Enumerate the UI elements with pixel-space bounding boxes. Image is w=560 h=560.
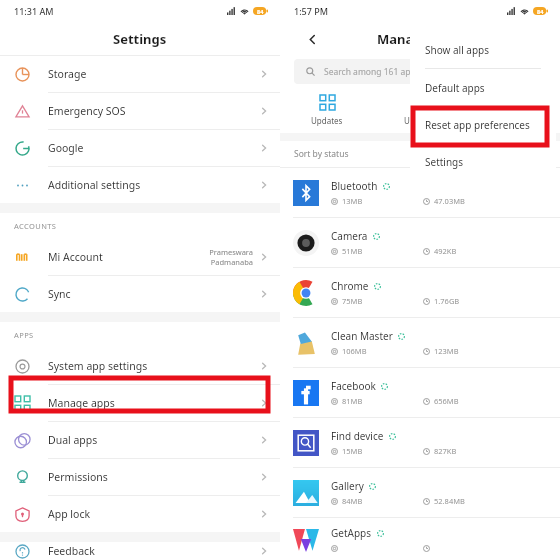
staticText: Clean Master (331, 329, 393, 343)
staticText: Manage apps (48, 396, 115, 410)
staticText: Permissions (48, 470, 108, 484)
staticText: Gallery (331, 479, 364, 493)
button[interactable]: Uninstall (374, 88, 467, 133)
staticText: 84 (257, 8, 264, 15)
staticText: Facebook (331, 379, 376, 393)
button[interactable]: Manage apps (0, 385, 280, 421)
staticText: Manage apps (377, 30, 464, 48)
staticText: Prameswara Padmanaba (209, 247, 253, 267)
staticText: 75MB (342, 296, 363, 306)
button[interactable]: App lock (0, 496, 280, 532)
button[interactable]: Storage (0, 56, 280, 92)
staticText: App lock (48, 507, 91, 521)
staticText: 84MB (342, 496, 363, 506)
button[interactable]: Find device (280, 418, 560, 467)
button[interactable]: Additional settings (0, 167, 280, 203)
staticText: Sync (48, 287, 71, 301)
staticText: 15MB (342, 446, 363, 456)
button[interactable]: Reset app preferences (410, 106, 556, 143)
staticText: 106MB (342, 346, 367, 356)
staticText: 827KB (434, 446, 457, 456)
staticText: Additional settings (48, 178, 141, 192)
button[interactable]: Facebook (280, 368, 560, 417)
button[interactable]: Updates (280, 88, 374, 133)
staticText: 656MB (434, 396, 459, 406)
staticText: Search among 161 apps (324, 66, 420, 78)
button[interactable]: Gallery (280, 468, 560, 517)
staticText: Settings (113, 30, 167, 48)
button[interactable]: Sync (0, 276, 280, 312)
staticText: Reset app preferences (425, 118, 530, 132)
staticText: 11:31 AM (14, 5, 54, 17)
button[interactable]: Camera (280, 218, 560, 267)
staticText: Chrome (331, 279, 369, 293)
button[interactable]: Search among 161 apps (294, 59, 546, 84)
staticText: Dual apps (48, 433, 98, 447)
button[interactable]: Default apps (410, 69, 556, 106)
staticText: ACCOUNTS (14, 221, 57, 231)
staticText: 51MB (342, 246, 363, 256)
staticText: Bluetooth (331, 179, 378, 193)
button[interactable]: Chrome (280, 268, 560, 317)
staticText: 123MB (434, 346, 459, 356)
button[interactable]: Clean Master (280, 318, 560, 367)
staticText: APPS (14, 330, 34, 340)
button[interactable]: Google (0, 130, 280, 166)
staticText: Google (48, 141, 84, 155)
button[interactable]: System app settings (0, 348, 280, 384)
button[interactable]: Settings (410, 143, 556, 180)
staticText: 1:57 PM (294, 5, 328, 17)
staticText: Emergency SOS (48, 104, 126, 118)
button[interactable]: Dual apps (0, 422, 280, 458)
staticText: Permissions (491, 115, 537, 126)
staticText: Sort by status (294, 148, 349, 160)
staticText: 1.76GB (434, 296, 460, 306)
staticText: Uninstall (404, 115, 438, 126)
staticText: Updates (311, 115, 343, 126)
staticText: Default apps (425, 81, 485, 95)
button[interactable]: Permissions (0, 459, 280, 495)
staticText: Find device (331, 429, 384, 443)
staticText: 84 (537, 8, 544, 15)
staticText: Storage (48, 67, 87, 81)
staticText: 52.84MB (434, 496, 465, 506)
staticText: Show all apps (425, 43, 490, 57)
button[interactable]: Feedback (0, 542, 280, 560)
staticText: 13MB (342, 196, 363, 206)
staticText: Mi Account (48, 250, 103, 264)
staticText: 81MB (342, 396, 363, 406)
staticText: System app settings (48, 359, 148, 373)
button[interactable]: GetApps (280, 518, 560, 560)
button[interactable]: Mi Account (0, 239, 280, 275)
staticText: 47.03MB (434, 196, 465, 206)
staticText: GetApps (331, 526, 372, 540)
button[interactable]: Bluetooth (280, 168, 560, 217)
button[interactable]: Permissions (467, 88, 560, 133)
button[interactable]: Emergency SOS (0, 93, 280, 129)
button[interactable]: Sort by status (294, 141, 560, 167)
staticText: Settings (425, 155, 464, 169)
button[interactable]: Show all apps (410, 31, 556, 68)
button[interactable]: Back (302, 29, 322, 49)
staticText: Camera (331, 229, 368, 243)
staticText: 492KB (434, 246, 457, 256)
staticText: Feedback (48, 544, 95, 558)
